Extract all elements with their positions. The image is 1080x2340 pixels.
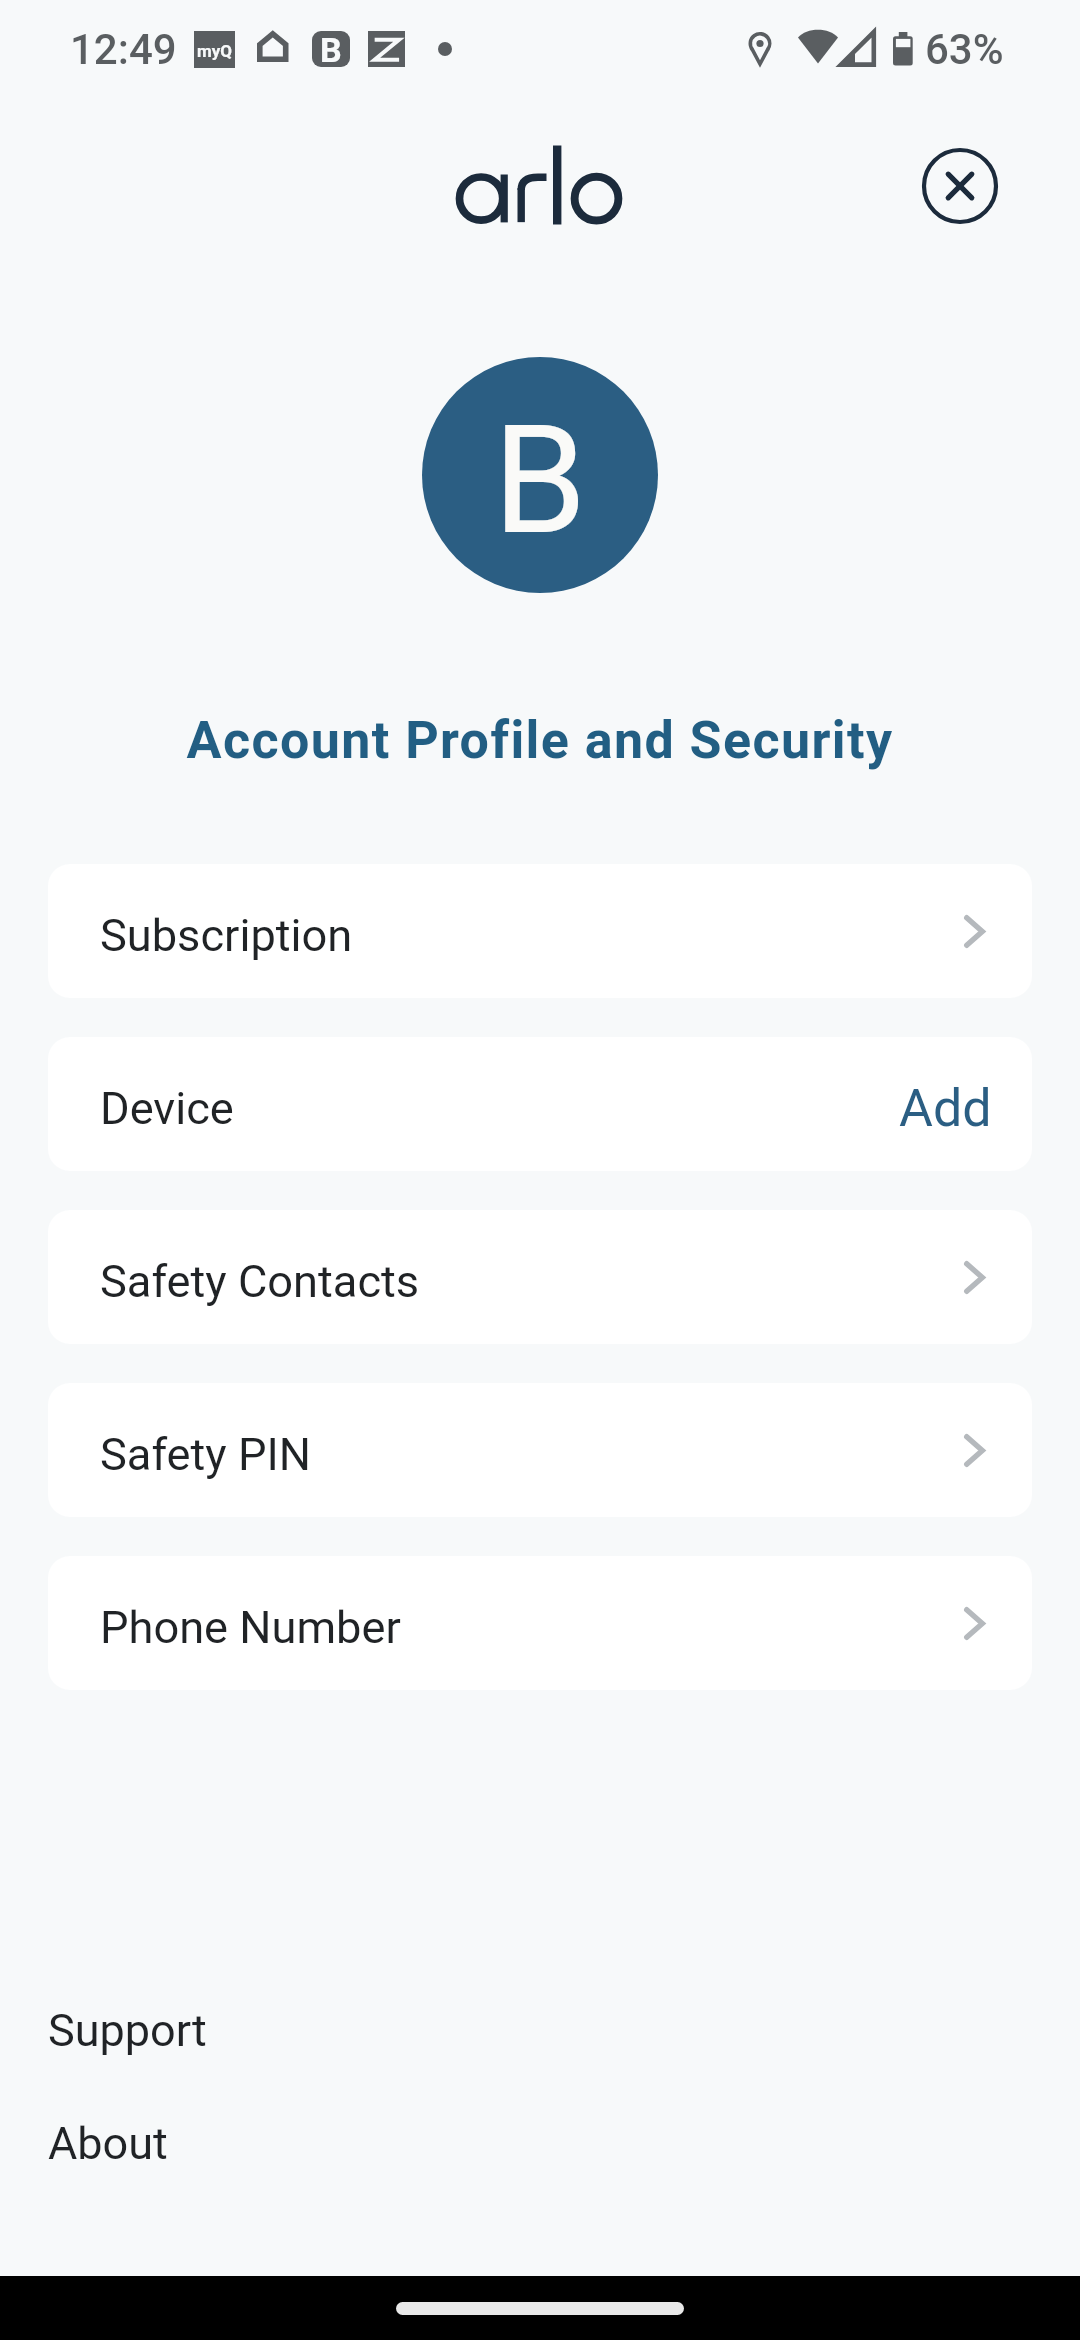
staticText: About [48, 2117, 168, 2170]
staticText: 63% [925, 25, 1004, 74]
staticText: Subscription [100, 909, 353, 962]
button[interactable]: Subscription [48, 864, 1032, 998]
staticText: B [320, 31, 342, 66]
staticText: Device [100, 1082, 234, 1135]
staticText: 12:49 [70, 25, 177, 74]
staticText: myQ [197, 41, 232, 61]
staticText: Add [899, 1078, 992, 1139]
staticText: Phone Number [100, 1601, 401, 1654]
button[interactable]: About [0, 2089, 1080, 2189]
staticText: Safety PIN [100, 1428, 311, 1481]
button[interactable]: Device [48, 1037, 1032, 1171]
staticText: Support [48, 2004, 207, 2057]
button[interactable]: Close [921, 147, 999, 225]
button[interactable]: Safety Contacts [48, 1210, 1032, 1344]
staticText: Account Profile and Security [0, 710, 1080, 771]
button[interactable]: Phone Number [48, 1556, 1032, 1690]
button[interactable]: Safety PIN [48, 1383, 1032, 1517]
button[interactable]: Support [0, 1976, 1080, 2076]
staticText: Safety Contacts [100, 1255, 420, 1308]
staticText: B [493, 393, 587, 569]
